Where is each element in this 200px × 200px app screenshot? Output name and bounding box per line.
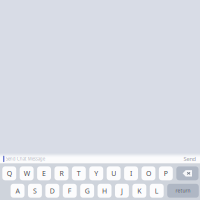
staticText: I [130, 169, 132, 178]
staticText: Y [94, 169, 98, 178]
button[interactable]: U [107, 166, 121, 180]
staticText: W [24, 169, 30, 178]
staticText: D [50, 186, 55, 195]
button[interactable]: K [132, 184, 146, 198]
button[interactable]: S [28, 184, 42, 198]
button[interactable]: R [54, 166, 68, 180]
staticText: R [59, 169, 63, 178]
staticText: O [146, 169, 151, 178]
button[interactable]: W [20, 166, 34, 180]
staticText: F [68, 186, 72, 195]
button[interactable]: D [45, 184, 59, 198]
staticText: Q [7, 169, 12, 178]
button[interactable]: A [11, 184, 24, 198]
button[interactable]: G [80, 184, 94, 198]
button[interactable]: J [115, 184, 129, 198]
staticText: G [85, 186, 90, 195]
button[interactable]: P [159, 166, 173, 180]
button[interactable]: return [167, 184, 199, 198]
staticText: E [42, 169, 46, 178]
staticText: K [137, 186, 141, 195]
button[interactable]: Q [2, 166, 16, 180]
staticText: Send [184, 155, 196, 163]
staticText: return [175, 188, 190, 194]
staticText: H [102, 186, 107, 195]
button[interactable]: Delete [176, 166, 198, 180]
staticText: T [77, 169, 81, 178]
staticText: A [16, 186, 20, 195]
staticText: L [155, 186, 159, 195]
button[interactable]: E [37, 166, 51, 180]
staticText: U [111, 169, 116, 178]
button[interactable]: H [98, 184, 111, 198]
button[interactable]: Y [89, 166, 103, 180]
staticText: P [164, 169, 168, 178]
staticText: J [121, 186, 123, 195]
button[interactable]: F [63, 184, 77, 198]
staticText: S [33, 186, 37, 195]
button[interactable]: I [124, 166, 138, 180]
button[interactable]: O [141, 166, 155, 180]
button[interactable]: L [150, 184, 164, 198]
button[interactable]: Send [182, 154, 197, 164]
button[interactable]: T [72, 166, 86, 180]
staticText: Send Chat Message [6, 156, 45, 162]
